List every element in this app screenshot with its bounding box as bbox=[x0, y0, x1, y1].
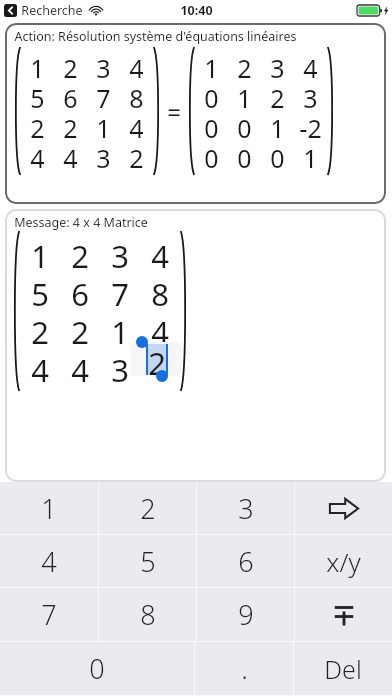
staticText: 6 bbox=[238, 543, 254, 580]
staticText: 0 bbox=[204, 81, 219, 111]
staticText: 6 bbox=[63, 81, 78, 111]
button[interactable]: 2 bbox=[99, 482, 196, 534]
staticText: 4 bbox=[31, 349, 49, 387]
staticText: . bbox=[241, 650, 248, 687]
staticText: 2 bbox=[71, 311, 89, 349]
staticText: 7 bbox=[111, 273, 129, 311]
staticText: 0 bbox=[270, 141, 285, 171]
staticText: = bbox=[167, 95, 181, 128]
staticText: 8 bbox=[151, 273, 169, 311]
staticText: 0 bbox=[89, 650, 105, 687]
staticText: 4 bbox=[303, 51, 318, 81]
staticText: 5 bbox=[140, 543, 156, 580]
staticText: 2 bbox=[148, 342, 166, 376]
staticText: 4 bbox=[41, 543, 57, 580]
staticText: 0 bbox=[237, 111, 252, 141]
button[interactable]: 4 bbox=[0, 535, 98, 587]
staticText: 4 bbox=[71, 349, 89, 387]
staticText: 8 bbox=[140, 596, 156, 633]
staticText: 1 bbox=[204, 51, 219, 81]
button[interactable]: Message: 4 x 4 Matrice bbox=[5, 209, 386, 482]
staticText: 1 bbox=[30, 51, 45, 81]
staticText: 1 bbox=[237, 81, 252, 111]
staticText: 5 bbox=[30, 81, 45, 111]
button[interactable]: Del bbox=[294, 642, 392, 695]
staticText: Message: 4 x 4 Matrice bbox=[14, 214, 148, 231]
staticText: 1 bbox=[111, 311, 129, 349]
button[interactable]: 8 bbox=[99, 588, 196, 641]
staticText: 2 bbox=[237, 51, 252, 81]
staticText: 1 bbox=[96, 111, 111, 141]
staticText: 2 bbox=[31, 311, 49, 349]
staticText: 4 bbox=[151, 311, 169, 349]
staticText: 10:40 bbox=[180, 2, 213, 19]
staticText: 2 bbox=[71, 235, 89, 273]
staticText: 2 bbox=[129, 141, 144, 171]
staticText: Action: Résolution système d'équations l… bbox=[14, 28, 297, 45]
button[interactable]: Enter bbox=[295, 482, 392, 534]
staticText: 4 bbox=[151, 235, 169, 273]
button[interactable]: 0 bbox=[0, 642, 194, 695]
button[interactable]: Back to Recherche bbox=[4, 2, 103, 19]
staticText: 2 bbox=[30, 111, 45, 141]
staticText: 3 bbox=[111, 235, 129, 273]
staticText: 4 bbox=[63, 141, 78, 171]
staticText: 0 bbox=[204, 111, 219, 141]
button[interactable]: 1 bbox=[0, 482, 98, 534]
button[interactable]: 3 bbox=[197, 482, 294, 534]
staticText: 3 bbox=[96, 51, 111, 81]
staticText: 3 bbox=[111, 349, 129, 387]
staticText: 5 bbox=[31, 273, 49, 311]
staticText: 7 bbox=[41, 596, 57, 633]
staticText: 0 bbox=[204, 141, 219, 171]
button[interactable]: Minus plus sign bbox=[295, 588, 392, 641]
button[interactable]: 6 bbox=[197, 535, 294, 587]
button[interactable]: 7 bbox=[0, 588, 98, 641]
staticText: 3 bbox=[238, 490, 254, 527]
staticText: 8 bbox=[129, 81, 144, 111]
staticText: 3 bbox=[303, 81, 318, 111]
button[interactable]: . bbox=[195, 642, 293, 695]
staticText: 3 bbox=[96, 141, 111, 171]
staticText: 1 bbox=[41, 490, 57, 527]
staticText: 2 bbox=[140, 490, 156, 527]
button[interactable]: 2 bbox=[131, 342, 181, 376]
staticText: 2 bbox=[63, 111, 78, 141]
staticText: x/y bbox=[326, 544, 361, 579]
staticText: 4 bbox=[30, 141, 45, 171]
button[interactable]: 9 bbox=[197, 588, 294, 641]
staticText: 4 bbox=[129, 111, 144, 141]
staticText: 7 bbox=[96, 81, 111, 111]
staticText: -2 bbox=[299, 111, 322, 141]
staticText: 1 bbox=[31, 235, 49, 273]
staticText: 2 bbox=[63, 51, 78, 81]
staticText: 6 bbox=[71, 273, 89, 311]
staticText: 2 bbox=[270, 81, 285, 111]
staticText: Del bbox=[324, 652, 362, 686]
staticText: Recherche bbox=[21, 2, 83, 19]
staticText: 3 bbox=[270, 51, 285, 81]
staticText: 1 bbox=[270, 111, 285, 141]
button[interactable]: Action: Résolution système d'équations l… bbox=[5, 23, 386, 204]
staticText: 4 bbox=[129, 51, 144, 81]
button[interactable]: 5 bbox=[99, 535, 196, 587]
staticText: 0 bbox=[237, 141, 252, 171]
staticText: 9 bbox=[238, 596, 254, 633]
staticText: 1 bbox=[303, 141, 318, 171]
button[interactable]: x/y bbox=[295, 535, 392, 587]
